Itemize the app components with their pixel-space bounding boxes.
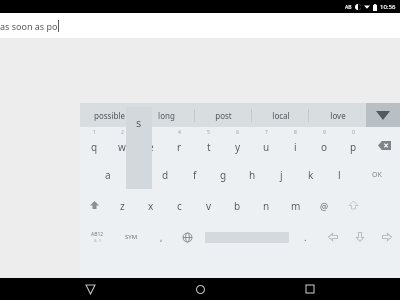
staticText: k <box>308 168 314 182</box>
staticText: s <box>136 115 142 130</box>
button[interactable]: love <box>309 103 366 127</box>
staticText: w <box>118 140 126 154</box>
button[interactable]: h <box>238 159 267 191</box>
button[interactable]: 1 <box>80 127 108 159</box>
staticText: post <box>215 110 232 121</box>
staticText: , <box>160 231 163 243</box>
button[interactable]: @ <box>310 191 339 221</box>
staticText: m <box>291 199 301 213</box>
staticText: 9 <box>323 129 326 136</box>
button[interactable]: Shift <box>80 191 108 221</box>
staticText: u <box>263 140 270 154</box>
staticText: 4 <box>178 129 181 136</box>
button[interactable]: , <box>148 221 174 253</box>
staticText: f <box>193 168 197 182</box>
button[interactable]: 4 <box>165 127 194 159</box>
button[interactable]: s <box>122 159 151 191</box>
button[interactable]: Backspace <box>368 127 400 159</box>
staticText: l <box>338 168 341 182</box>
button[interactable]: b <box>223 191 252 221</box>
button[interactable]: local <box>252 103 309 127</box>
button[interactable]: j <box>267 159 296 191</box>
staticText: r <box>177 140 182 154</box>
button[interactable]: Shift lock <box>339 191 368 221</box>
button[interactable]: Home <box>180 278 220 300</box>
staticText: b <box>234 199 241 213</box>
button[interactable]: f <box>180 159 209 191</box>
button[interactable]: l <box>325 159 354 191</box>
staticText: 2 <box>121 129 124 136</box>
button[interactable]: 8 <box>281 127 310 159</box>
button[interactable]: 3 <box>136 127 165 159</box>
staticText: local <box>272 110 290 121</box>
button[interactable]: AB12 <box>80 221 114 253</box>
staticText: a <box>105 168 111 182</box>
button[interactable]: SYM <box>114 221 148 253</box>
button[interactable]: post <box>195 103 252 127</box>
staticText: x <box>148 199 154 213</box>
button[interactable]: Down <box>346 221 373 253</box>
button[interactable]: Right <box>373 221 400 253</box>
staticText: g <box>220 168 227 182</box>
button[interactable]: x <box>136 191 165 221</box>
button[interactable]: long <box>138 103 195 127</box>
staticText: possible <box>94 110 125 121</box>
button[interactable]: v <box>194 191 223 221</box>
button[interactable]: g <box>209 159 238 191</box>
button[interactable]: n <box>252 191 281 221</box>
staticText: v <box>206 199 212 213</box>
staticText: h <box>249 168 256 182</box>
staticText: p <box>350 140 357 154</box>
staticText: AB12 <box>91 231 104 238</box>
staticText: c <box>177 199 182 213</box>
staticText: 6 <box>236 129 239 136</box>
button[interactable]: z <box>108 191 136 221</box>
button[interactable]: possible <box>80 103 138 127</box>
button[interactable]: c <box>165 191 194 221</box>
button[interactable]: 0 <box>339 127 368 159</box>
staticText: AB <box>345 4 352 11</box>
staticText: 0 <box>352 129 355 136</box>
staticText: @ <box>320 200 329 212</box>
staticText: e <box>148 140 154 154</box>
staticText: as soon as po <box>0 20 58 32</box>
button[interactable]: 9 <box>310 127 339 159</box>
staticText: 10:56 <box>380 3 396 11</box>
button[interactable]: as soon as po <box>0 13 400 38</box>
button[interactable]: Recent apps <box>290 278 330 300</box>
button[interactable]: . <box>292 221 319 253</box>
staticText: o <box>321 140 328 154</box>
button[interactable]: 2 <box>108 127 136 159</box>
button[interactable]: m <box>281 191 310 221</box>
button[interactable]: 7 <box>252 127 281 159</box>
staticText: long <box>158 110 175 121</box>
button[interactable]: d <box>151 159 180 191</box>
staticText: 1 <box>93 129 96 136</box>
button[interactable]: OK <box>354 159 400 191</box>
button[interactable]: Left <box>319 221 346 253</box>
staticText: j <box>280 168 283 182</box>
staticText: y <box>235 140 241 154</box>
staticText: 8 <box>294 129 297 136</box>
button[interactable]: Change language <box>174 221 201 253</box>
button[interactable]: Space <box>201 221 292 253</box>
staticText: i <box>294 140 297 154</box>
staticText: . <box>304 231 307 243</box>
button[interactable]: 6 <box>223 127 252 159</box>
staticText: d <box>162 168 169 182</box>
button[interactable]: 5 <box>194 127 223 159</box>
staticText: SYM <box>125 233 138 241</box>
staticText: 7 <box>265 129 268 136</box>
staticText: love <box>330 110 346 121</box>
staticText: t <box>207 140 211 154</box>
button[interactable]: Expand suggestions <box>366 103 400 127</box>
staticText: OK <box>372 170 382 180</box>
button[interactable]: a <box>93 159 122 191</box>
button[interactable]: Back <box>70 278 110 300</box>
staticText: n <box>263 199 270 213</box>
button[interactable]: k <box>296 159 325 191</box>
staticText: z <box>120 199 125 213</box>
staticText: 5 <box>207 129 210 136</box>
